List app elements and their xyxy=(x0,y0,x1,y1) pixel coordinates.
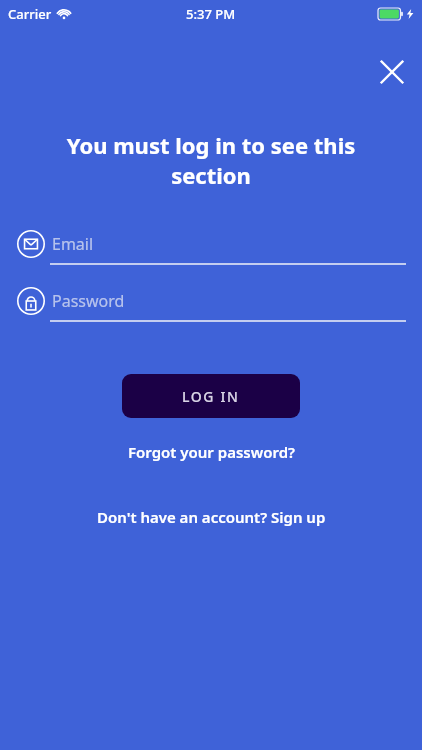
staticText: You must log in to see this section xyxy=(56,130,366,190)
button[interactable]: Don't have an account? Sign up xyxy=(0,503,422,531)
staticText: LOG IN xyxy=(182,387,240,406)
staticText: 5:37 PM xyxy=(186,5,236,23)
button[interactable]: LOG IN xyxy=(122,374,300,418)
staticText: Forgot your password? xyxy=(128,442,295,462)
button[interactable]: Email xyxy=(52,226,406,262)
other: Email xyxy=(13,226,49,262)
button[interactable]: Close xyxy=(368,48,416,96)
staticText: Email xyxy=(52,233,94,255)
staticText: Don't have an account? Sign up xyxy=(97,507,326,527)
button[interactable]: Forgot your password? xyxy=(0,438,422,466)
staticText: Carrier xyxy=(8,5,52,23)
staticText: Password xyxy=(52,290,125,312)
button[interactable]: Password xyxy=(52,283,406,319)
other: Password xyxy=(13,283,49,319)
